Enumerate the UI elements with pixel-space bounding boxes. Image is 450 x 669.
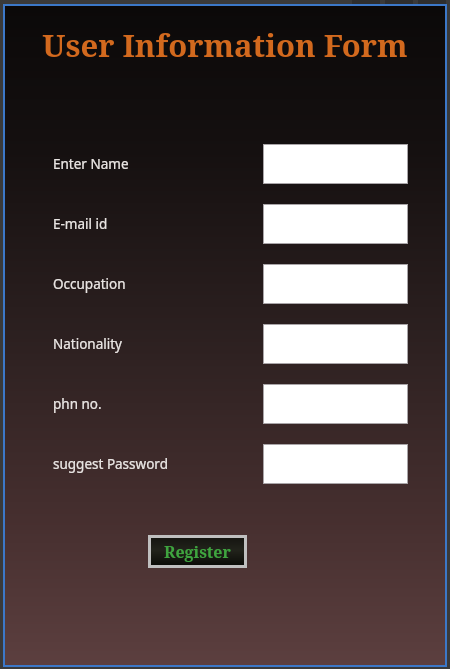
button[interactable]: phn no. xyxy=(5,384,445,424)
staticText: suggest Password xyxy=(53,455,168,473)
staticText: phn no. xyxy=(53,395,102,413)
button[interactable]: Nationality xyxy=(5,324,445,364)
staticText: E-mail id xyxy=(53,215,108,233)
button[interactable]: suggest Password xyxy=(5,444,445,484)
staticText: Occupation xyxy=(53,275,126,293)
button[interactable]: Register xyxy=(151,538,244,565)
button[interactable]: Occupation xyxy=(5,264,445,304)
staticText: User Information Form xyxy=(5,24,445,66)
staticText: Nationality xyxy=(53,335,122,353)
staticText: Register xyxy=(164,541,231,563)
button[interactable]: E-mail id xyxy=(5,204,445,244)
button[interactable]: Enter Name xyxy=(5,144,445,184)
staticText: Enter Name xyxy=(53,155,129,173)
